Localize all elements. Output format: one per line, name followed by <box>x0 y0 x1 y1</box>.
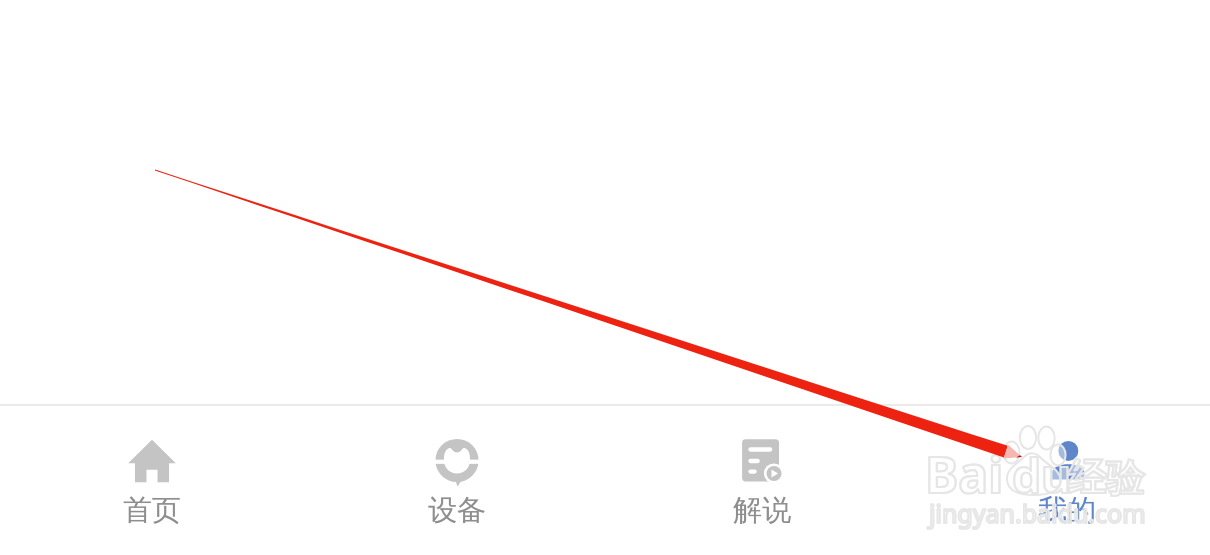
staticText: 解说 <box>733 492 791 529</box>
staticText: Bai <box>925 440 1004 508</box>
staticText: 设备 <box>428 492 486 529</box>
staticText: du <box>1012 444 1071 507</box>
button[interactable]: 解说 <box>610 406 914 555</box>
button[interactable]: 首页 <box>0 406 304 555</box>
button[interactable]: 设备 <box>305 406 609 555</box>
staticText: jingyan.baidu.com <box>929 496 1146 530</box>
staticText: 首页 <box>123 492 181 529</box>
staticText: 经验 <box>1068 454 1144 502</box>
staticText: 我的 <box>1038 492 1096 529</box>
staticText: Bai <box>925 440 1004 508</box>
button[interactable]: 我的 <box>915 406 1210 555</box>
staticText: 经验 <box>1068 454 1144 502</box>
staticText: jingyan.baidu.com <box>929 496 1146 530</box>
staticText: du <box>1012 444 1071 507</box>
